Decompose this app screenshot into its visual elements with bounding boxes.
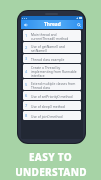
- staticText: Thread class: [31, 85, 51, 89]
- staticText: Use of getName() and: [31, 44, 65, 48]
- button[interactable]: 6: [23, 91, 81, 100]
- staticText: 1: [25, 33, 28, 38]
- button[interactable]: 5: [23, 79, 81, 90]
- staticText: 3: [25, 56, 28, 61]
- staticText: 2: [25, 45, 28, 50]
- staticText: 4: [25, 69, 28, 74]
- staticText: Use of join() method: [31, 114, 63, 118]
- button[interactable]: 2: [23, 42, 81, 53]
- button[interactable]: Search: [74, 20, 83, 29]
- staticText: Create a Thread by: [31, 65, 61, 69]
- button[interactable]: 8: [23, 111, 81, 120]
- staticText: implementing from Runnable: [31, 69, 77, 73]
- button[interactable]: 1: [23, 30, 81, 41]
- staticText: Use of setPriority() method: [31, 94, 73, 98]
- staticText: setName(): [31, 48, 47, 52]
- staticText: 5: [25, 82, 28, 87]
- staticText: EASY TO: [29, 150, 72, 164]
- staticText: Thread class example: [31, 57, 65, 61]
- button[interactable]: 4: [23, 64, 81, 78]
- staticText: Extend multiple classes from: [31, 81, 76, 85]
- staticText: Use of sleep() method: [31, 104, 65, 108]
- staticText: Main thread and: [31, 32, 57, 36]
- button[interactable]: 3: [23, 54, 81, 63]
- staticText: UNDERSTAND: [15, 165, 87, 179]
- staticText: interface: [31, 73, 45, 77]
- button[interactable]: 7: [23, 101, 81, 110]
- staticText: 8: [25, 113, 28, 118]
- staticText: 6: [25, 93, 28, 98]
- staticText: 7: [25, 103, 28, 108]
- button[interactable]: Back: [21, 20, 30, 29]
- staticText: Thread: [44, 21, 61, 28]
- staticText: currentThread() method: [31, 36, 69, 40]
